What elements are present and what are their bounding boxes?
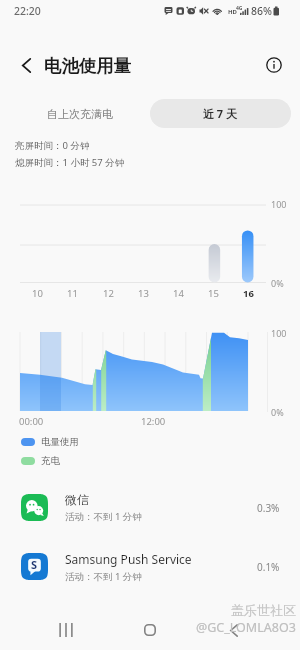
- button[interactable]: 近 7 天: [150, 99, 291, 128]
- button[interactable]: Home: [134, 614, 166, 646]
- staticText: 11: [67, 287, 78, 300]
- staticText: 100: [271, 198, 287, 210]
- staticText: 14: [173, 287, 184, 300]
- staticText: 0.1%: [257, 560, 280, 574]
- staticText: 12: [103, 287, 114, 300]
- staticText: 86%: [251, 4, 272, 18]
- staticText: 16: [243, 287, 254, 300]
- staticText: @GC_LOMLA8O3: [196, 619, 296, 636]
- button[interactable]: 自上次充满电: [9, 99, 150, 128]
- staticText: Samsung Push Service: [65, 551, 192, 567]
- staticText: 电池使用量: [44, 55, 131, 77]
- staticText: 12:00: [141, 415, 166, 428]
- staticText: 自上次充满电: [47, 107, 113, 121]
- staticText: 10: [32, 287, 43, 300]
- staticText: 充电: [41, 455, 60, 467]
- staticText: 0.3%: [257, 501, 280, 515]
- staticText: 活动：不到 1 分钟: [65, 570, 142, 583]
- staticText: 电量使用: [41, 436, 79, 448]
- staticText: 活动：不到 1 分钟: [65, 510, 142, 523]
- staticText: 熄屏时间：1 小时 57 分钟: [15, 156, 125, 169]
- staticText: 盖乐世社区: [231, 602, 296, 618]
- button[interactable]: Back: [12, 51, 40, 79]
- button[interactable]: 微信: [0, 480, 300, 535]
- staticText: 亮屏时间：0 分钟: [15, 139, 90, 152]
- staticText: 0%: [271, 406, 284, 418]
- staticText: S: [31, 557, 38, 572]
- staticText: 13: [138, 287, 149, 300]
- staticText: 0%: [271, 277, 284, 289]
- staticText: HD: [228, 8, 237, 16]
- button[interactable]: S: [0, 539, 300, 594]
- button[interactable]: Recent apps: [50, 614, 82, 646]
- button[interactable]: Info: [261, 52, 287, 78]
- staticText: 15: [208, 287, 219, 300]
- staticText: 微信: [65, 492, 89, 507]
- staticText: 100: [271, 327, 287, 339]
- staticText: 00:00: [19, 415, 44, 428]
- staticText: 近 7 天: [203, 106, 238, 121]
- staticText: 4G: [236, 5, 243, 12]
- button[interactable]: Back: [218, 614, 250, 646]
- staticText: 22:20: [14, 4, 41, 18]
